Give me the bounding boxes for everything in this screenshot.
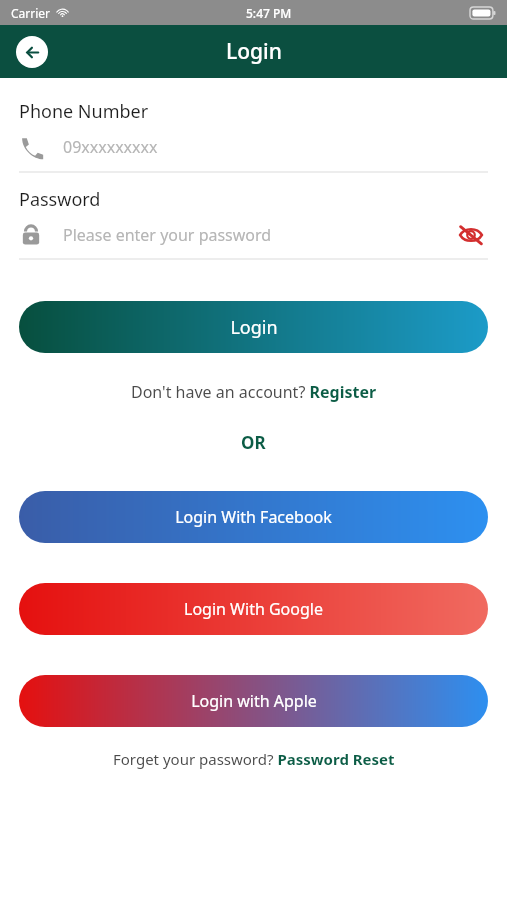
button[interactable]: Login With Google [19,583,488,635]
button[interactable]: Show password [454,218,488,252]
staticText: Login with Apple [191,690,317,712]
staticText: Login [230,315,278,340]
button[interactable]: Login with Apple [19,675,488,727]
button[interactable]: Login [19,301,488,353]
staticText: Forget your password? Password Reset [113,749,395,769]
staticText: 09xxxxxxxxx [63,136,158,158]
staticText: Password [19,187,101,212]
staticText: Please enter your password [63,224,272,246]
staticText: Login With Facebook [175,506,332,528]
staticText: Phone Number [19,99,149,124]
staticText: Login With Google [184,598,323,620]
button[interactable]: Back [16,36,48,68]
staticText: Login [226,37,282,66]
staticText: OR [241,431,266,454]
staticText: Don't have an account? Register [131,381,377,403]
button[interactable]: 09xxxxxxxxx [19,130,488,164]
staticText: Carrier [11,5,51,21]
staticText: 5:47 PM [246,5,292,21]
button[interactable]: Login With Facebook [19,491,488,543]
